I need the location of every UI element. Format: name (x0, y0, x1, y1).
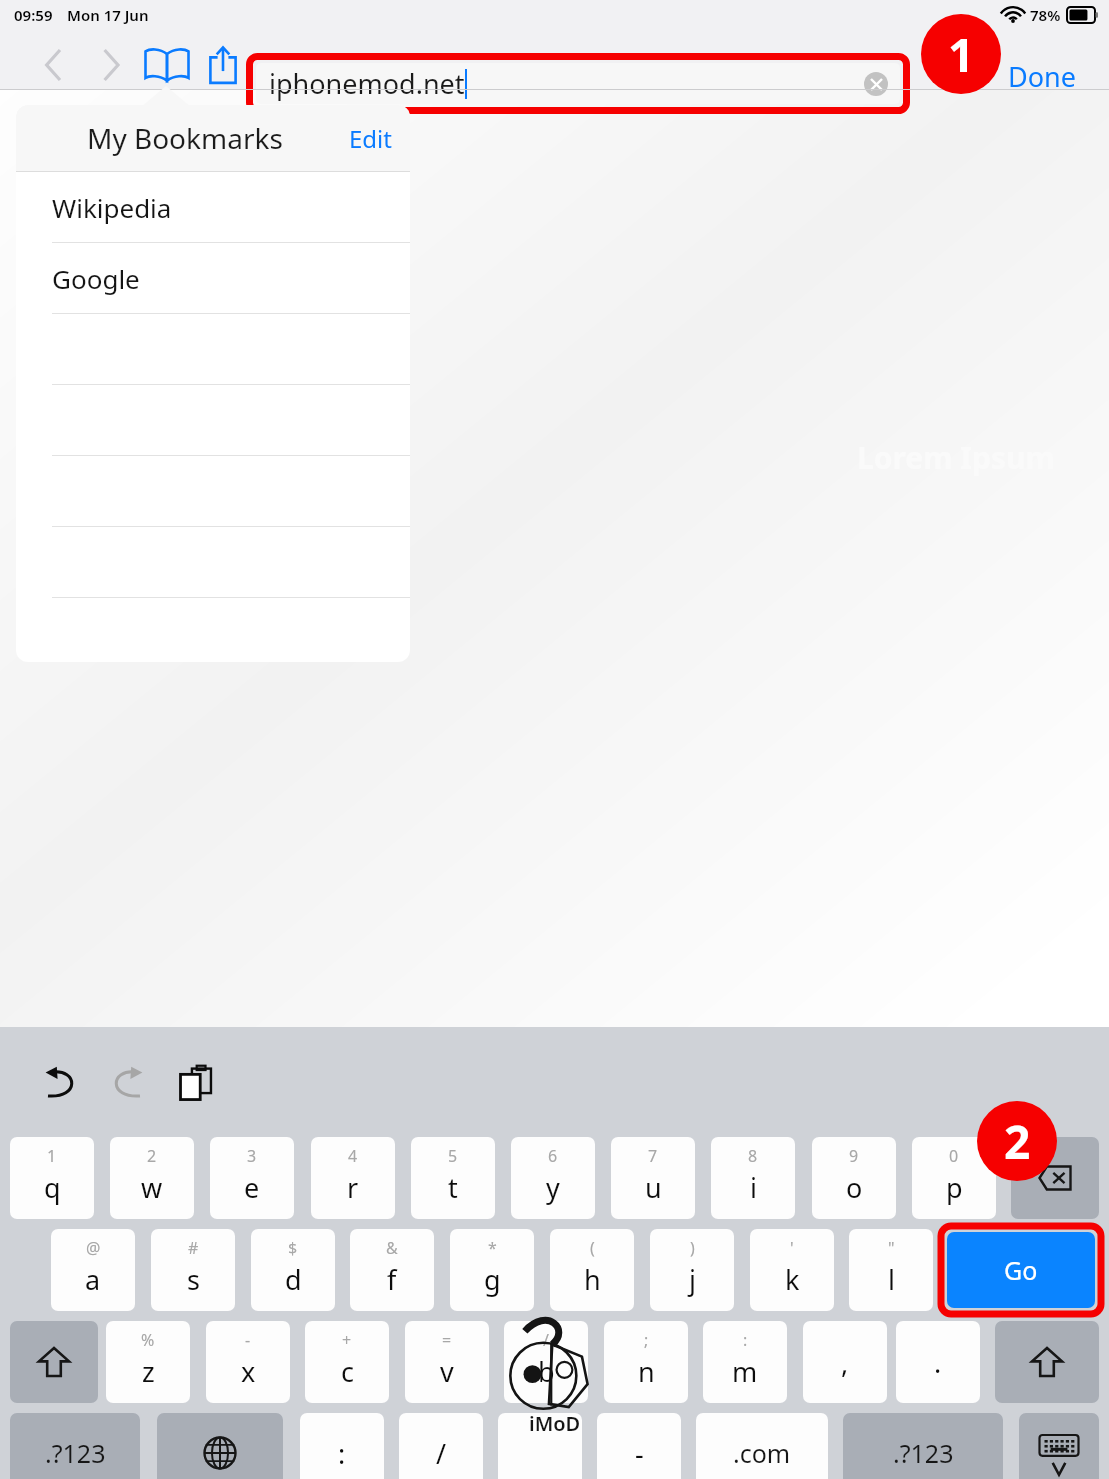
staticText: = (442, 1329, 452, 1351)
button[interactable]: Shift (995, 1321, 1099, 1403)
button[interactable]: * (450, 1229, 534, 1311)
button[interactable]: # (151, 1229, 235, 1311)
staticText: My Bookmarks (87, 119, 283, 157)
staticText: 9 (849, 1145, 859, 1167)
button[interactable]: / (399, 1413, 483, 1479)
staticText: $ (288, 1237, 298, 1259)
button[interactable]: 0 (912, 1137, 996, 1219)
button[interactable]: 2 (110, 1137, 194, 1219)
staticText: .?123 (893, 1436, 954, 1470)
staticText: Mon 17 Jun (67, 5, 149, 25)
staticText: , (841, 1344, 849, 1381)
staticText: ( (590, 1237, 595, 1259)
staticText: / (543, 1329, 549, 1351)
staticText: j (689, 1261, 696, 1298)
button[interactable]: = (405, 1321, 489, 1403)
button[interactable]: Wikipedia (16, 172, 410, 243)
button[interactable]: % (106, 1321, 190, 1403)
button[interactable]: 6 (511, 1137, 595, 1219)
button[interactable]: Hide keyboard (1019, 1413, 1099, 1479)
button[interactable]: Go (947, 1232, 1095, 1308)
button[interactable]: Numbers (843, 1413, 1003, 1479)
button[interactable]: 8 (711, 1137, 795, 1219)
button[interactable]: : (300, 1413, 384, 1479)
button[interactable]: Done (1008, 58, 1076, 95)
button[interactable]: .com (696, 1413, 828, 1479)
staticText: x (241, 1353, 256, 1390)
button[interactable]: ( (550, 1229, 634, 1311)
staticText: 3 (247, 1145, 257, 1167)
button[interactable]: ' (750, 1229, 834, 1311)
button[interactable]: Backspace (1011, 1137, 1099, 1219)
button[interactable]: Google (16, 243, 410, 314)
button[interactable]: 4 (311, 1137, 395, 1219)
staticText: d (285, 1261, 302, 1298)
staticText: l (888, 1261, 895, 1298)
button[interactable]: ) (650, 1229, 734, 1311)
staticText: .com (733, 1436, 791, 1470)
button[interactable]: , (803, 1321, 887, 1403)
button[interactable]: + (305, 1321, 389, 1403)
staticText: 4 (348, 1145, 358, 1167)
staticText: p (946, 1169, 963, 1206)
staticText: 5 (448, 1145, 458, 1167)
staticText: / (436, 1435, 447, 1472)
button[interactable]: Change keyboard (157, 1413, 283, 1479)
staticText: * (488, 1237, 497, 1259)
staticText: t (448, 1169, 458, 1206)
staticText: Wikipedia (52, 190, 172, 225)
button[interactable]: Bookmarks (140, 40, 194, 90)
staticText: Google (52, 261, 140, 296)
staticText: e (244, 1169, 260, 1206)
staticText: Go (1004, 1253, 1038, 1287)
button[interactable]: @ (51, 1229, 135, 1311)
button[interactable]: - (206, 1321, 290, 1403)
button[interactable]: Paste (164, 1051, 228, 1115)
staticText: @ (86, 1237, 101, 1259)
button[interactable]: 9 (812, 1137, 896, 1219)
button[interactable]: Undo (28, 1051, 92, 1115)
staticText: b (538, 1353, 555, 1390)
button[interactable]: Numbers (10, 1413, 140, 1479)
button[interactable]: 1 (10, 1137, 94, 1219)
button[interactable]: . (896, 1321, 980, 1403)
button[interactable]: " (849, 1229, 933, 1311)
staticText: : (338, 1435, 346, 1472)
staticText: " (888, 1237, 895, 1259)
button[interactable]: Edit (349, 122, 392, 155)
staticText: 1 (948, 23, 975, 86)
staticText: q (44, 1169, 61, 1206)
staticText: y (546, 1169, 560, 1206)
staticText: . (934, 1344, 942, 1381)
button[interactable]: Share (199, 40, 247, 90)
staticText: 7 (648, 1145, 658, 1167)
button[interactable]: 3 (210, 1137, 294, 1219)
button[interactable]: Back (30, 42, 76, 88)
button[interactable]: 7 (611, 1137, 695, 1219)
staticText: h (584, 1261, 601, 1298)
staticText: v (440, 1353, 454, 1390)
button[interactable]: Clear (864, 72, 888, 96)
button[interactable]: Forward (88, 42, 134, 88)
button[interactable]: 5 (411, 1137, 495, 1219)
staticText: g (484, 1261, 501, 1298)
button[interactable]: / (504, 1321, 588, 1403)
staticText: k (785, 1261, 800, 1298)
staticText: u (645, 1169, 662, 1206)
staticText: n (638, 1353, 655, 1390)
staticText: w (141, 1169, 163, 1206)
button[interactable]: : (703, 1321, 787, 1403)
staticText: 2 (1004, 1110, 1031, 1173)
staticText: : (743, 1329, 748, 1351)
button[interactable] (498, 1413, 582, 1479)
button[interactable]: ; (604, 1321, 688, 1403)
button[interactable]: & (350, 1229, 434, 1311)
button[interactable]: $ (251, 1229, 335, 1311)
button[interactable]: Redo (96, 1051, 160, 1115)
staticText: # (188, 1237, 199, 1259)
button[interactable]: Shift (10, 1321, 98, 1403)
button[interactable]: iphonemod.net (256, 63, 900, 104)
staticText: - (635, 1435, 644, 1472)
button[interactable]: - (597, 1413, 681, 1479)
